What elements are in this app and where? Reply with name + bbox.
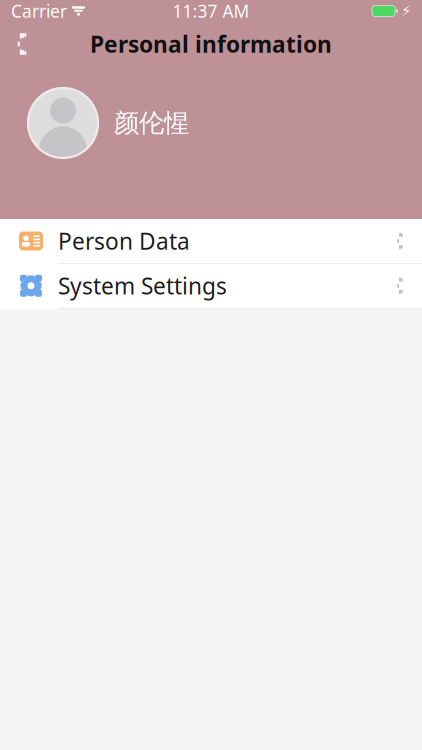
button[interactable]: Back <box>0 22 44 66</box>
staticText: Personal information <box>90 29 332 59</box>
button[interactable]: System Settings <box>0 264 422 309</box>
button[interactable]: Person Data <box>0 219 422 264</box>
staticText: ⚡︎ <box>401 3 411 19</box>
staticText: System Settings <box>58 271 227 301</box>
staticText: 颜伦惺 <box>114 107 189 138</box>
staticText: 11:37 AM <box>172 0 249 22</box>
staticText: Person Data <box>58 226 190 256</box>
staticText: Carrier <box>11 0 67 22</box>
